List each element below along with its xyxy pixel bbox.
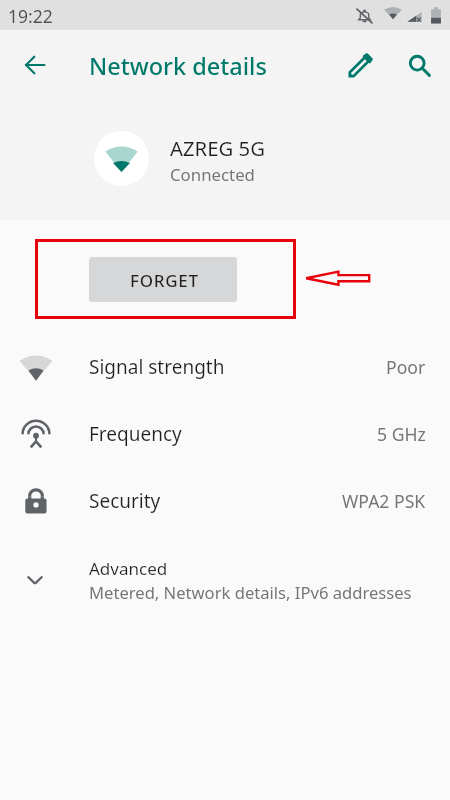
staticText: Metered, Network details, IPv6 addresses: [89, 581, 412, 604]
staticText: Network details: [89, 50, 267, 82]
staticText: 5 GHz: [377, 422, 426, 446]
button[interactable]: Security: [0, 467, 450, 534]
button[interactable]: Signal strength: [0, 333, 450, 400]
staticText: Poor: [386, 355, 426, 379]
staticText: AZREG 5G: [170, 134, 265, 162]
staticText: Frequency: [89, 421, 182, 447]
staticText: Connected: [170, 163, 255, 186]
button[interactable]: FORGET: [89, 257, 237, 302]
staticText: Security: [89, 488, 161, 514]
button[interactable]: Back: [11, 41, 59, 89]
staticText: FORGET: [130, 269, 199, 292]
staticText: WPA2 PSK: [342, 489, 426, 513]
staticText: 19:22: [8, 4, 53, 28]
staticText: Signal strength: [89, 354, 225, 380]
staticText: Advanced: [89, 557, 168, 580]
button[interactable]: Frequency: [0, 400, 450, 467]
button[interactable]: Advanced: [0, 534, 450, 604]
button[interactable]: Edit: [336, 41, 384, 89]
button[interactable]: Search: [395, 41, 443, 89]
